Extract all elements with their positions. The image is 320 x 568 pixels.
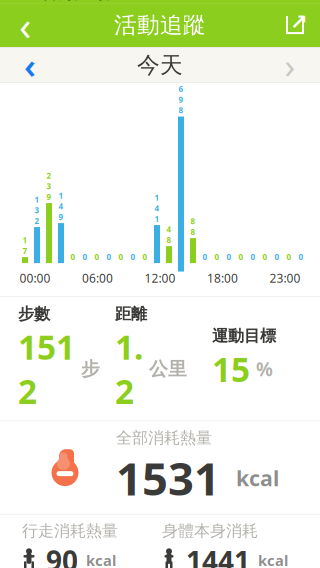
staticText: 88	[190, 216, 195, 237]
staticText: kcal	[258, 551, 288, 568]
staticText: 132	[34, 194, 39, 226]
staticText: 身體本身消耗	[162, 521, 258, 541]
staticText: 0	[70, 251, 75, 262]
staticText: 0	[286, 251, 291, 262]
staticText: 0	[106, 251, 111, 262]
staticText: 79%	[245, 0, 276, 4]
staticText: ↗	[290, 10, 308, 34]
staticText: 0	[262, 251, 267, 262]
staticText: 18:00	[207, 270, 238, 286]
staticText: 19:34	[155, 0, 195, 4]
staticText: %	[256, 357, 273, 381]
staticText: 今天	[137, 51, 183, 79]
staticText: 239	[46, 170, 51, 202]
button[interactable]: Previous day	[0, 47, 60, 83]
staticText: 活動追蹤	[114, 11, 206, 39]
staticText: 0	[238, 251, 243, 262]
staticText: 運動目標	[212, 326, 276, 346]
staticText: 1531	[116, 448, 220, 508]
staticText: 1441	[186, 542, 250, 568]
staticText: 0	[226, 251, 231, 262]
button[interactable]: Share	[270, 3, 320, 47]
staticText: ›	[284, 42, 295, 88]
button[interactable]: Next day	[260, 47, 320, 83]
staticText: 0	[94, 251, 99, 262]
staticText: 698	[178, 84, 183, 116]
staticText: 12:00	[144, 270, 175, 286]
staticText: 141	[154, 192, 159, 224]
staticText: 00:00	[19, 270, 50, 286]
staticText: 1.2	[115, 325, 143, 413]
staticText: 15	[212, 347, 250, 391]
staticText: 06:00	[82, 270, 113, 286]
staticText: 行走消耗熱量	[22, 521, 118, 541]
staticText: 公里	[149, 357, 187, 380]
staticText: 步	[81, 357, 100, 380]
staticText: 0	[274, 251, 279, 262]
staticText: kcal	[236, 464, 279, 492]
staticText: 0	[142, 251, 147, 262]
staticText: 步數	[18, 304, 50, 324]
staticText: 149	[58, 190, 63, 222]
staticText: ‹	[24, 42, 36, 88]
button[interactable]: Back	[0, 3, 50, 47]
staticText: 23:00	[269, 270, 300, 286]
staticText: ‹	[19, 0, 31, 52]
staticText: 48	[166, 224, 171, 245]
staticText: 0	[214, 251, 219, 262]
staticText: 距離	[115, 304, 147, 324]
staticText: 1512	[18, 325, 75, 413]
staticText: 0	[202, 251, 207, 262]
staticText: 0	[298, 251, 303, 262]
staticText: 全部消耗熱量	[116, 428, 212, 448]
staticText: 0	[130, 251, 135, 262]
staticText: 90	[46, 542, 78, 568]
staticText: 0	[250, 251, 255, 262]
staticText: 台湾大哥大	[42, 0, 122, 3]
staticText: 0	[118, 251, 123, 262]
staticText: 17	[22, 235, 27, 256]
staticText: kcal	[86, 551, 116, 568]
staticText: 0	[82, 251, 87, 262]
